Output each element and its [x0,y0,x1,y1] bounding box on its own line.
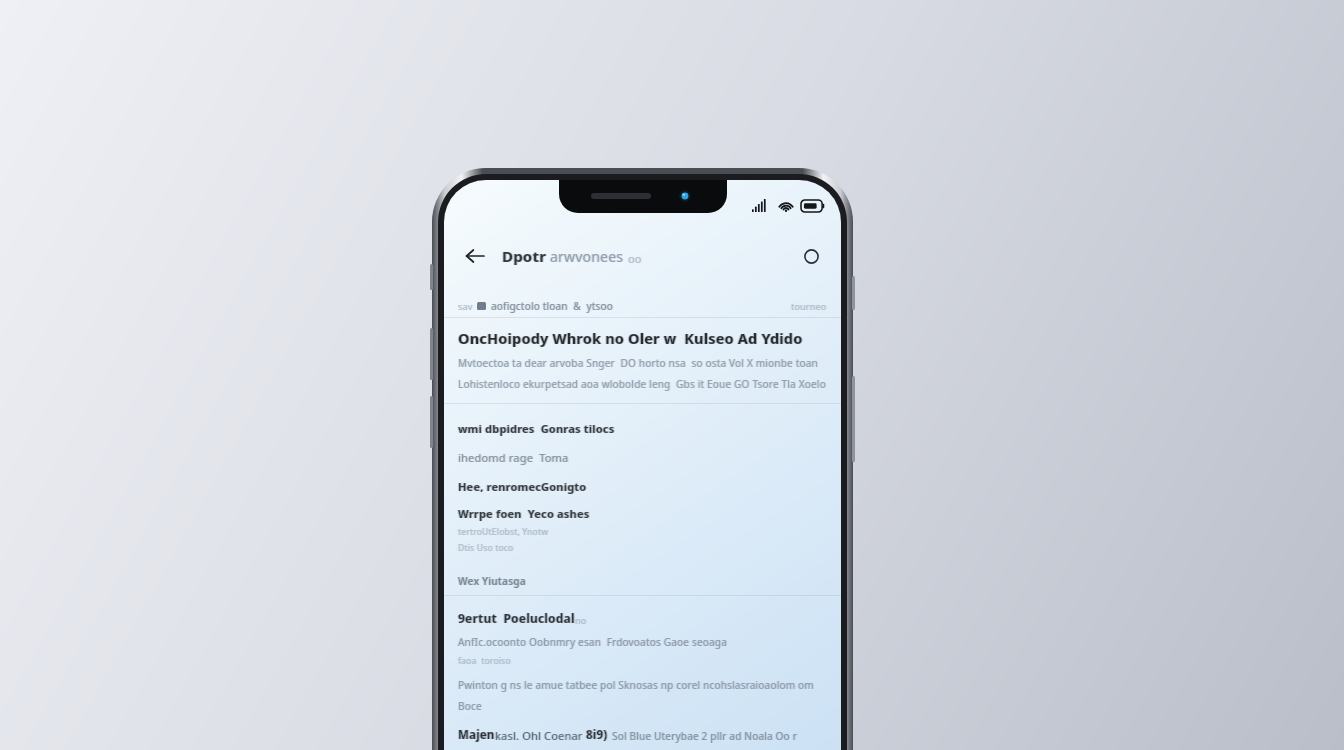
staticText: Wex Yiutasga [457,574,525,588]
staticText: Boce [457,699,481,713]
staticText: faoa toroiso [457,655,510,667]
staticText: oo [629,251,643,266]
staticText: Hee, renromecGonigto [457,479,586,494]
staticText: Dtis Uso toco [458,542,514,554]
staticText: arwvonees [549,247,623,266]
staticText: Lohistenloco ekurpetsad aoa wlobolde len… [459,377,828,391]
staticText: wmi dbpidres Gonras tilocs [458,421,615,436]
staticText: oo [627,251,641,266]
staticText: wmi dbpidres Gonras tilocs [459,421,616,436]
staticText: Boce [458,699,482,713]
staticText: 9ertut Poeluclodal [457,610,574,626]
staticText: Dpotr [502,246,547,266]
button[interactable]: Hee, renromecGonigto [444,472,841,501]
staticText: Majen [457,727,494,743]
staticText: sav [457,300,472,312]
staticText: tertroUtElobst, Ynotw [457,526,548,538]
staticText: 9ertut Poeluclodal [459,610,576,626]
staticText: Sol Blue Uterybae 2 pllr ad Noala Oo r [612,729,797,743]
staticText: kasl. Ohl Coenar [495,728,586,743]
staticText: arwvonees [550,247,624,266]
button[interactable]: sav [444,295,841,317]
staticText: tourneo [792,300,828,312]
staticText: Majen [458,727,495,743]
staticText: Wex Yiutasga [458,574,526,588]
staticText: 8i9) [585,727,607,743]
staticText: Wrrpe foen Yeco ashes [457,506,589,521]
staticText: Pwinton g ns le amue tatbee pol Sknosas … [457,678,813,692]
button[interactable]: wmi dbpidres Gonras tilocs [444,414,841,443]
staticText: kasl. Ohl Coenar [494,728,585,743]
staticText: Boce [459,699,483,713]
staticText: aofigctolo tloan & ytsoo [491,299,614,313]
staticText: Dpotr [501,246,546,266]
button[interactable]: ihedomd rage Toma [444,443,841,472]
staticText: Dpotr [503,246,548,266]
button[interactable]: Back [458,239,492,273]
staticText: faoa toroiso [458,655,511,667]
staticText: no [575,614,587,626]
staticText: tertroUtElobst, Ynotw [458,526,549,538]
staticText: Wrrpe foen Yeco ashes [459,506,591,521]
staticText: Hee, renromecGonigto [459,479,588,494]
staticText: Mvtoectoa ta dear arvoba Snger DO horto … [457,356,817,370]
staticText: Pwinton g ns le amue tatbee pol Sknosas … [458,678,814,692]
staticText: AnfIc.ocoonto Oobnmry esan Frdovoatos Ga… [458,635,727,649]
staticText: sav [459,300,474,312]
staticText: tourneo [790,300,826,312]
staticText: OncHoipody Whrok no Oler w Kulseo Ad Ydi… [459,328,804,348]
staticText: OncHoipody Whrok no Oler w Kulseo Ad Ydi… [457,328,802,348]
staticText: ihedomd rage Toma [458,450,569,465]
staticText: sav [458,300,473,312]
staticText: 8i9) [586,727,608,743]
staticText: oo [628,251,642,266]
staticText: Sol Blue Uterybae 2 pllr ad Noala Oo r [611,729,796,743]
staticText: aofigctolo tloan & ytsoo [490,299,613,313]
staticText: OncHoipody Whrok no Oler w Kulseo Ad Ydi… [458,328,803,348]
staticText: Mvtoectoa ta dear arvoba Snger DO horto … [458,356,818,370]
staticText: no [576,614,588,626]
staticText: tourneo [791,300,827,312]
button[interactable]: Wex Yiutasga [444,567,841,595]
button[interactable]: 9ertut Poeluclodal [444,610,841,750]
staticText: Dtis Uso toco [457,542,513,554]
staticText: ihedomd rage Toma [459,450,570,465]
staticText: kasl. Ohl Coenar [496,728,587,743]
staticText: ihedomd rage Toma [457,450,568,465]
staticText: Pwinton g ns le amue tatbee pol Sknosas … [459,678,815,692]
staticText: Wex Yiutasga [459,574,527,588]
staticText: no [574,614,586,626]
staticText: Lohistenloco ekurpetsad aoa wlobolde len… [457,377,826,391]
staticText: 8i9) [587,727,609,743]
staticText: 9ertut Poeluclodal [458,610,575,626]
staticText: faoa toroiso [459,655,512,667]
button[interactable]: OncHoipody Whrok no Oler w Kulseo Ad Ydi… [444,328,841,403]
staticText: aofigctolo tloan & ytsoo [492,299,615,313]
staticText: Majen [459,727,496,743]
staticText: Sol Blue Uterybae 2 pllr ad Noala Oo r [613,729,798,743]
staticText: wmi dbpidres Gonras tilocs [457,421,614,436]
staticText: AnfIc.ocoonto Oobnmry esan Frdovoatos Ga… [457,635,726,649]
staticText: tertroUtElobst, Ynotw [459,526,550,538]
button[interactable]: Wrrpe foen Yeco ashes [444,501,841,559]
staticText: arwvonees [551,247,625,266]
staticText: AnfIc.ocoonto Oobnmry esan Frdovoatos Ga… [459,635,728,649]
staticText: Wrrpe foen Yeco ashes [458,506,590,521]
staticText: Hee, renromecGonigto [458,479,587,494]
staticText: Mvtoectoa ta dear arvoba Snger DO horto … [459,356,819,370]
staticText: Lohistenloco ekurpetsad aoa wlobolde len… [458,377,827,391]
button[interactable]: More options [795,240,827,272]
staticText: Dtis Uso toco [459,542,515,554]
